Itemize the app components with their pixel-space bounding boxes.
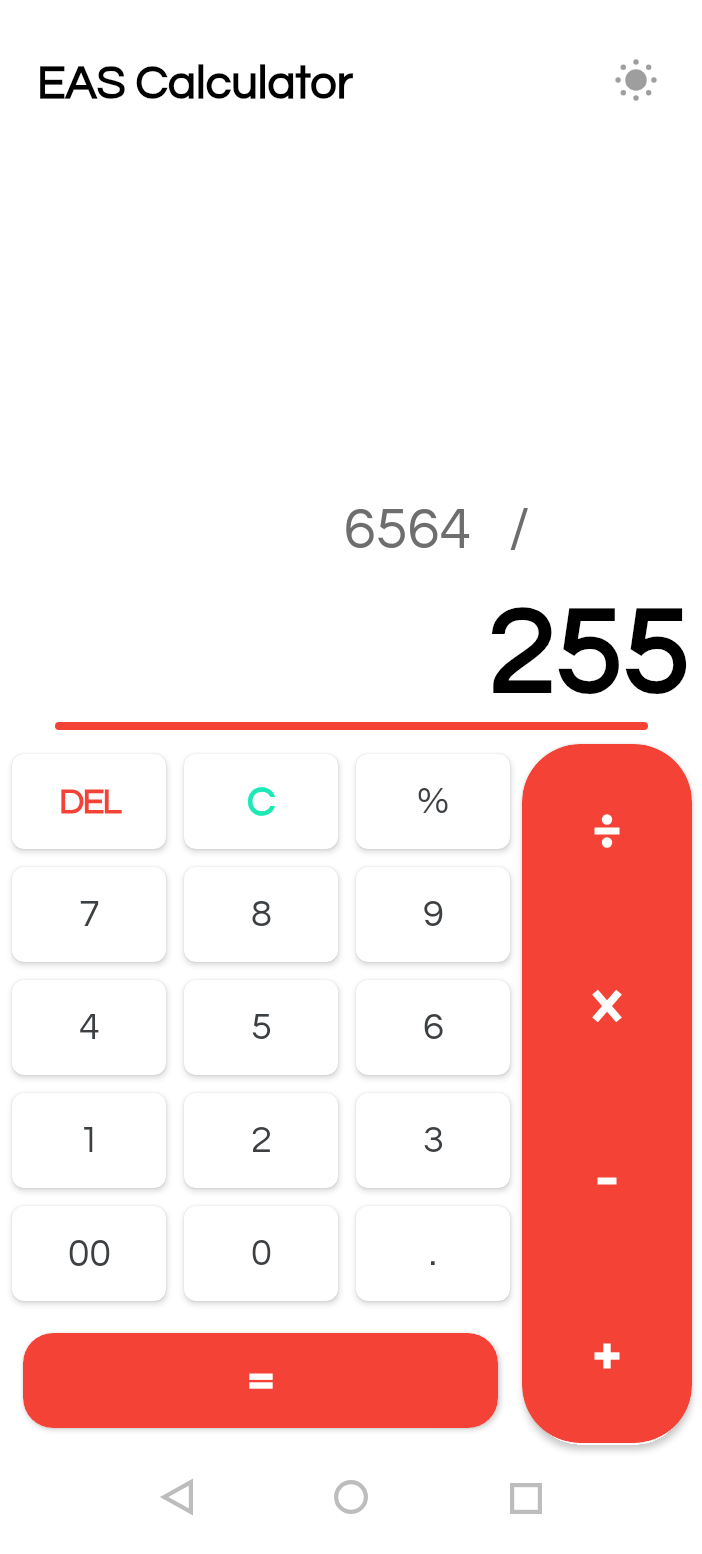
staticText: EAS Calculator: [37, 59, 353, 107]
staticText: DEL: [59, 783, 120, 820]
button[interactable]: minus: [522, 1093, 692, 1268]
staticText: 4: [79, 1008, 100, 1047]
button[interactable]: 4: [12, 980, 166, 1075]
button[interactable]: C: [184, 754, 338, 849]
button[interactable]: %: [356, 754, 510, 849]
staticText: 6564 /: [0, 500, 530, 560]
button[interactable]: divide: [522, 744, 692, 918]
button[interactable]: multiply: [522, 918, 692, 1093]
button[interactable]: 5: [184, 980, 338, 1075]
button[interactable]: Home: [314, 1460, 388, 1534]
button[interactable]: .: [356, 1206, 510, 1301]
button[interactable]: DEL: [12, 754, 166, 849]
staticText: 00: [68, 1234, 111, 1274]
button[interactable]: plus: [522, 1268, 692, 1443]
button[interactable]: 00: [12, 1206, 166, 1301]
button[interactable]: 7: [12, 867, 166, 962]
staticText: 7: [79, 895, 100, 934]
staticText: 6: [423, 1008, 444, 1047]
button[interactable]: 1: [12, 1093, 166, 1188]
staticText: 1: [79, 1121, 100, 1160]
button[interactable]: Toggle theme: [608, 52, 664, 108]
button[interactable]: 2: [184, 1093, 338, 1188]
staticText: 9: [423, 895, 444, 934]
staticText: .: [429, 1234, 437, 1273]
staticText: 5: [251, 1008, 272, 1047]
staticText: C: [247, 781, 276, 823]
staticText: %: [417, 782, 450, 821]
button[interactable]: 3: [356, 1093, 510, 1188]
staticText: 8: [251, 895, 272, 934]
button[interactable]: [23, 1333, 498, 1428]
staticText: 3: [423, 1121, 444, 1160]
button[interactable]: 6: [356, 980, 510, 1075]
staticText: 2: [251, 1121, 272, 1160]
button[interactable]: 0: [184, 1206, 338, 1301]
staticText: 255: [0, 591, 690, 717]
button[interactable]: 8: [184, 867, 338, 962]
button[interactable]: Back: [140, 1460, 214, 1534]
button[interactable]: Recent apps: [489, 1461, 563, 1535]
staticText: 0: [251, 1234, 272, 1273]
button[interactable]: 9: [356, 867, 510, 962]
